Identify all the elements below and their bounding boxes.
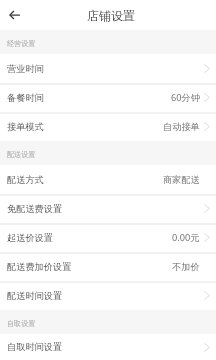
button[interactable]: 配送方式 <box>0 165 216 194</box>
staticText: 接单模式 <box>7 121 44 133</box>
staticText: 60分钟 <box>171 91 200 104</box>
staticText: 起送价设置 <box>7 232 53 244</box>
staticText: 配送费加价设置 <box>7 261 72 273</box>
staticText: 店铺设置 <box>87 8 135 23</box>
staticText: 营业时间 <box>7 63 44 75</box>
staticText: 自取时间设置 <box>7 341 63 353</box>
staticText: 配送设置 <box>7 150 36 159</box>
button[interactable]: 备餐时间 <box>0 83 216 112</box>
staticText: 商家配送 <box>163 174 200 186</box>
staticText: 免配送费设置 <box>7 203 63 215</box>
staticText: 0.00元 <box>172 231 200 244</box>
staticText: 配送方式 <box>7 174 44 186</box>
button[interactable]: 配送时间设置 <box>0 281 216 310</box>
staticText: 经营设置 <box>7 39 36 48</box>
button[interactable]: 接单模式 <box>0 112 216 141</box>
staticText: 自取设置 <box>7 319 36 328</box>
button[interactable]: 免配送费设置 <box>0 194 216 223</box>
button[interactable]: 起送价设置 <box>0 223 216 252</box>
button[interactable]: Back <box>0 1 28 29</box>
button[interactable]: 配送费加价设置 <box>0 252 216 281</box>
staticText: 配送时间设置 <box>7 290 63 302</box>
staticText: 不加价 <box>172 261 200 273</box>
staticText: 备餐时间 <box>7 92 44 104</box>
staticText: 自动接单 <box>163 121 200 133</box>
button[interactable]: 营业时间 <box>0 54 216 83</box>
button[interactable]: 自取时间设置 <box>0 334 216 360</box>
